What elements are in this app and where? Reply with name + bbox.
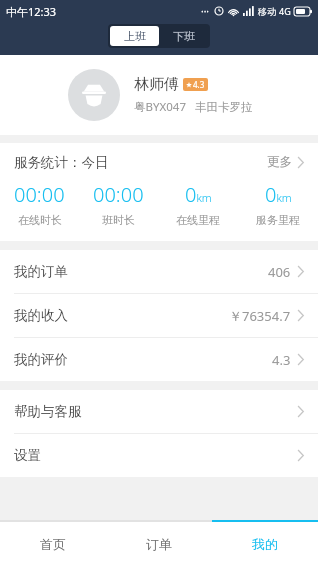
- staticText: 林师傅: [134, 75, 179, 94]
- staticText: 上班: [124, 29, 146, 43]
- button[interactable]: 我的评价: [0, 338, 318, 381]
- staticText: 4G: [279, 5, 291, 17]
- button[interactable]: 我的订单: [0, 250, 318, 293]
- staticText: ￥76354.7: [229, 307, 291, 325]
- staticText: 在线里程: [176, 213, 220, 227]
- button[interactable]: 帮助与客服: [0, 390, 318, 433]
- button[interactable]: 林师傅: [0, 55, 318, 135]
- staticText: 4.3: [272, 351, 291, 369]
- button[interactable]: 订单: [106, 522, 212, 566]
- staticText: 订单: [146, 536, 172, 552]
- staticText: ···: [201, 4, 210, 18]
- staticText: 406: [268, 263, 291, 281]
- staticText: 移动: [258, 6, 276, 17]
- button[interactable]: 我的: [212, 522, 318, 566]
- staticText: 班时长: [102, 213, 135, 227]
- staticText: 我的订单: [14, 263, 68, 280]
- button[interactable]: 我的收入: [0, 294, 318, 337]
- staticText: 00:00: [93, 181, 144, 208]
- staticText: 首页: [40, 536, 66, 552]
- other: Signal: [243, 6, 255, 16]
- staticText: 帮助与客服: [14, 403, 82, 420]
- button[interactable]: 首页: [0, 522, 106, 566]
- button[interactable]: 下班: [159, 26, 208, 46]
- button[interactable]: 设置: [0, 434, 318, 477]
- staticText: 我的评价: [14, 351, 68, 368]
- staticText: 下班: [173, 29, 195, 43]
- other: Alarm: [214, 6, 224, 16]
- staticText: 我的: [252, 536, 278, 552]
- staticText: 粤BYX047 丰田卡罗拉: [134, 99, 253, 115]
- staticText: 00:00: [14, 181, 65, 208]
- button[interactable]: 上班: [110, 26, 159, 46]
- staticText: 0km: [185, 181, 212, 208]
- button[interactable]: 服务统计：今日: [0, 143, 318, 181]
- staticText: 在线时长: [18, 213, 62, 227]
- other: WiFi: [228, 6, 239, 17]
- staticText: 设置: [14, 447, 41, 464]
- staticText: 中午12:33: [6, 4, 57, 19]
- staticText: 更多: [267, 154, 292, 170]
- other: Battery: [294, 7, 312, 16]
- staticText: 服务统计：今日: [14, 154, 109, 171]
- staticText: 我的收入: [14, 307, 68, 324]
- staticText: 4.3: [193, 79, 205, 90]
- staticText: 服务里程: [256, 213, 300, 227]
- staticText: 0km: [265, 181, 292, 208]
